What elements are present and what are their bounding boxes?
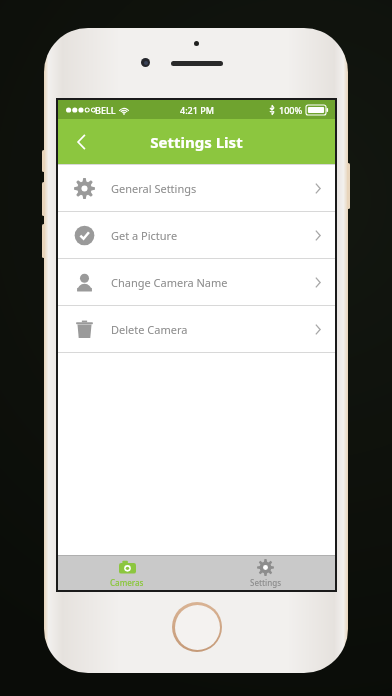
staticText: Get a Picture (111, 228, 315, 243)
button[interactable]: Change Camera Name (58, 259, 335, 305)
staticText: General Settings (111, 181, 315, 196)
staticText: Settings (250, 577, 282, 588)
staticText: 4:21 PM (180, 104, 214, 116)
button[interactable]: Back (62, 123, 100, 161)
staticText: Settings List (150, 132, 243, 152)
staticText: Change Camera Name (111, 275, 315, 290)
button[interactable]: Settings (196, 556, 335, 590)
staticText: 100% (279, 104, 303, 116)
button[interactable]: General Settings (58, 165, 335, 211)
staticText: Cameras (110, 577, 144, 588)
button[interactable]: Delete Camera (58, 306, 335, 352)
staticText: BELL (95, 104, 116, 116)
button[interactable]: Get a Picture (58, 212, 335, 258)
button[interactable]: Cameras (58, 556, 196, 590)
staticText: Delete Camera (111, 322, 315, 337)
